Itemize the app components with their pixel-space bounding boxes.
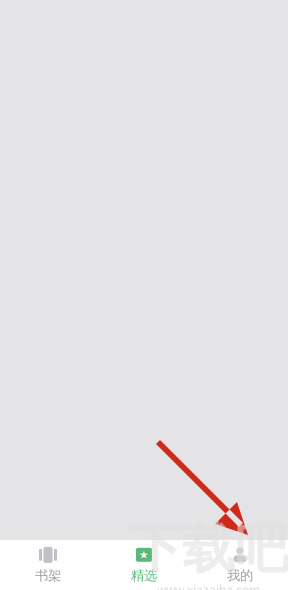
staticText: 下载吧: [129, 516, 288, 582]
staticText: 我的: [227, 567, 253, 584]
button[interactable]: 书架: [0, 540, 96, 590]
button[interactable]: ★: [96, 540, 192, 590]
staticText: ★: [139, 549, 149, 561]
staticText: www.xiazaiba.com: [157, 582, 260, 590]
staticText: 精选: [131, 567, 157, 584]
staticText: 书架: [35, 567, 61, 584]
button[interactable]: 我的: [192, 540, 288, 590]
